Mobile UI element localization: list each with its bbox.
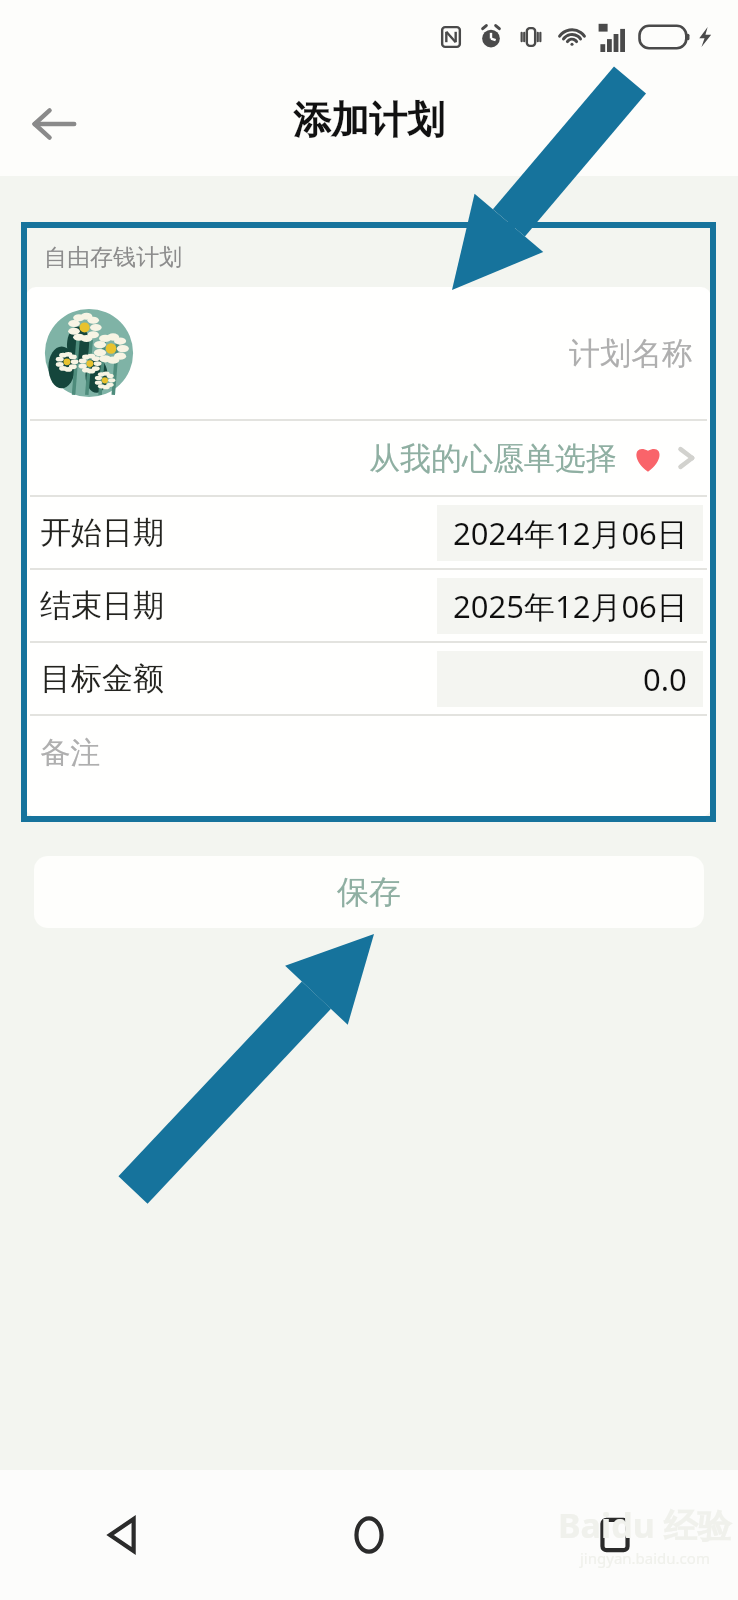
staticText: 保存: [337, 872, 401, 912]
staticText: 备注: [40, 734, 100, 772]
staticText: 2025年12月06日: [453, 585, 688, 627]
button[interactable]: Back: [16, 86, 92, 162]
button[interactable]: 开始日期: [26, 497, 711, 568]
button[interactable]: Back: [0, 1470, 246, 1600]
staticText: 自由存钱计划: [44, 243, 182, 272]
button[interactable]: 从我的心愿单选择: [26, 421, 711, 495]
staticText: 开始日期: [40, 513, 164, 552]
staticText: 计划名称: [569, 334, 693, 373]
button[interactable]: 目标金额: [26, 643, 711, 714]
button[interactable]: 结束日期: [26, 570, 711, 641]
button[interactable]: 备注: [26, 716, 711, 817]
staticText: Baidu 经验: [558, 1502, 732, 1548]
button[interactable]: Home: [246, 1470, 492, 1600]
button[interactable]: 保存: [34, 856, 704, 928]
staticText: 结束日期: [40, 586, 164, 625]
staticText: 添加计划: [293, 96, 445, 144]
button[interactable]: Recents: [492, 1470, 738, 1600]
staticText: 0.0: [643, 658, 687, 700]
staticText: 目标金额: [40, 659, 164, 698]
staticText: 2024年12月06日: [453, 512, 688, 554]
staticText: 从我的心愿单选择: [369, 439, 617, 478]
button[interactable]: 计划名称: [26, 287, 711, 419]
staticText: jingyan.baidu.com: [580, 1548, 710, 1568]
